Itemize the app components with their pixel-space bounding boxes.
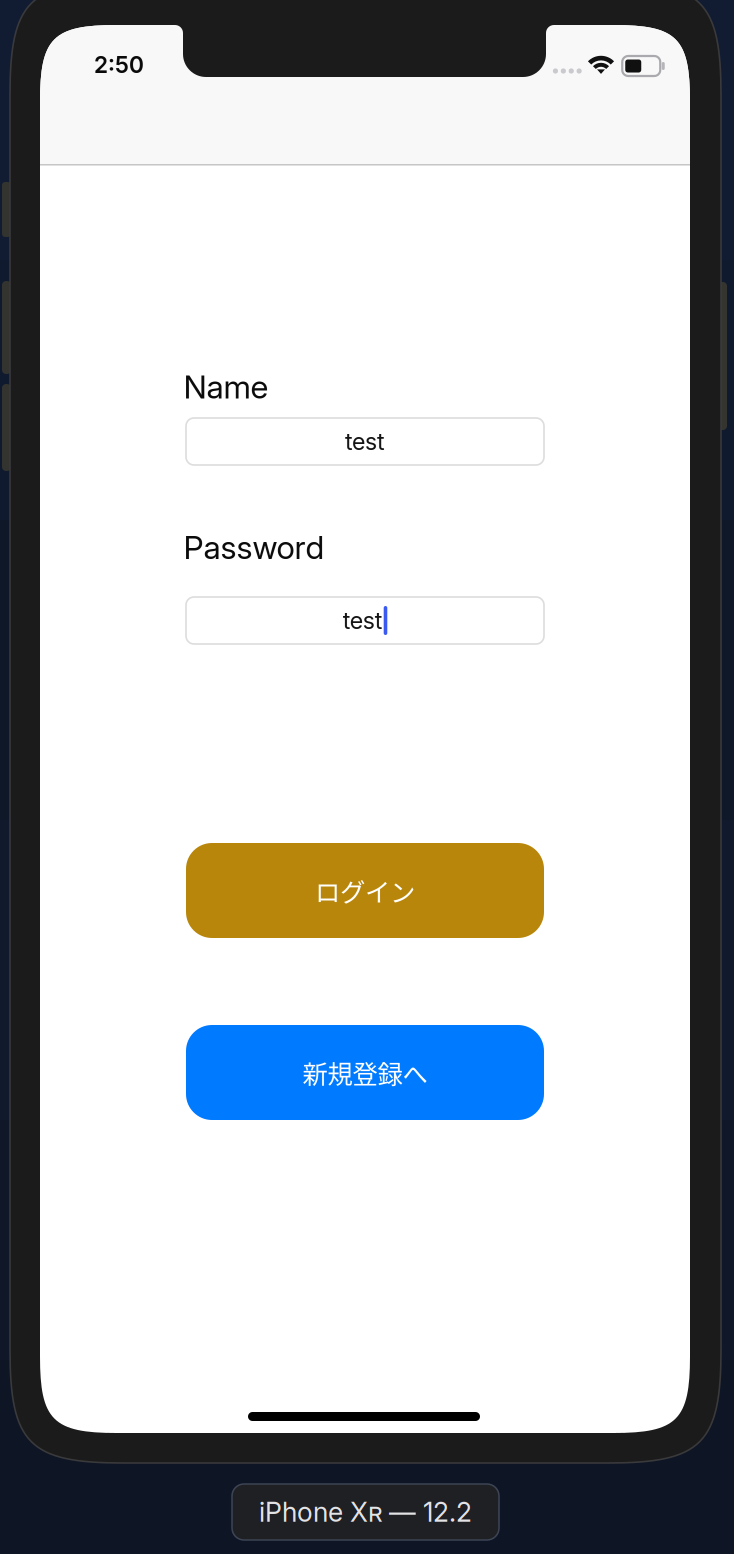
staticText: iPhone Xʀ — 12.2 bbox=[259, 1496, 472, 1528]
staticText: Password bbox=[183, 528, 324, 567]
button[interactable]: ログイン bbox=[186, 843, 544, 938]
staticText: test bbox=[343, 606, 383, 635]
button[interactable]: iPhone Xʀ — 12.2 bbox=[232, 1484, 499, 1540]
staticText: Name bbox=[183, 367, 268, 406]
button[interactable]: 新規登録へ bbox=[186, 1025, 544, 1120]
staticText: 2:50 bbox=[94, 51, 144, 78]
button[interactable]: Name bbox=[186, 418, 544, 465]
staticText: test bbox=[345, 427, 385, 456]
staticText: ログイン bbox=[315, 872, 415, 909]
button[interactable]: Password bbox=[186, 597, 544, 644]
staticText: 新規登録へ bbox=[302, 1054, 427, 1091]
